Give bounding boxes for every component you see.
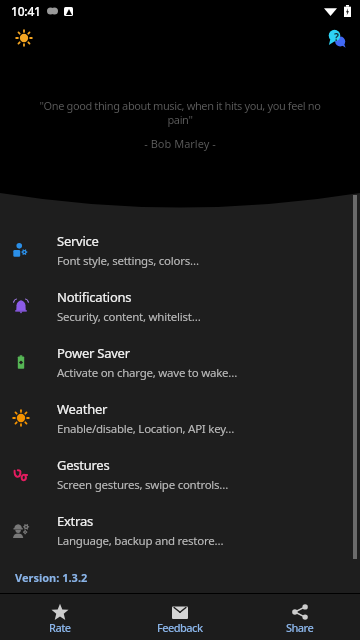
staticText: Share <box>286 620 314 635</box>
staticText: Feedback <box>157 620 203 635</box>
staticText: Notifications <box>57 288 132 306</box>
button[interactable]: Feedback <box>120 594 240 640</box>
staticText: Screen gestures, swipe controls… <box>57 477 229 493</box>
staticText: - Bob Marley - <box>144 136 216 151</box>
button[interactable]: Share <box>240 594 360 640</box>
button[interactable]: Theme <box>9 23 38 52</box>
button[interactable]: Weather <box>0 390 360 446</box>
staticText: Weather <box>57 400 108 418</box>
staticText: Rate <box>49 620 71 635</box>
button[interactable]: Power Saver <box>0 334 360 390</box>
staticText: Font style, settings, colors… <box>57 253 199 269</box>
button[interactable]: Help <box>322 24 350 52</box>
staticText: Language, backup and restore… <box>57 533 224 549</box>
staticText: Security, content, whitelist… <box>57 309 201 325</box>
staticText: Version: 1.3.2 <box>15 570 88 585</box>
staticText: Service <box>57 232 99 250</box>
staticText: Gestures <box>57 456 110 474</box>
button[interactable]: Notifications <box>0 278 360 334</box>
staticText: Power Saver <box>57 344 130 362</box>
button[interactable]: Rate <box>0 594 120 640</box>
staticText: Activate on charge, wave to wake… <box>57 365 238 381</box>
button[interactable]: Gestures <box>0 446 360 502</box>
staticText: "One good thing about music, when it hit… <box>26 98 334 128</box>
button[interactable]: Service <box>0 222 360 278</box>
button[interactable]: Extras <box>0 502 360 558</box>
staticText: Enable/disable, Location, API key… <box>57 421 235 437</box>
staticText: Extras <box>57 512 93 530</box>
staticText: ? <box>334 30 340 44</box>
staticText: 10:41 <box>11 3 41 19</box>
